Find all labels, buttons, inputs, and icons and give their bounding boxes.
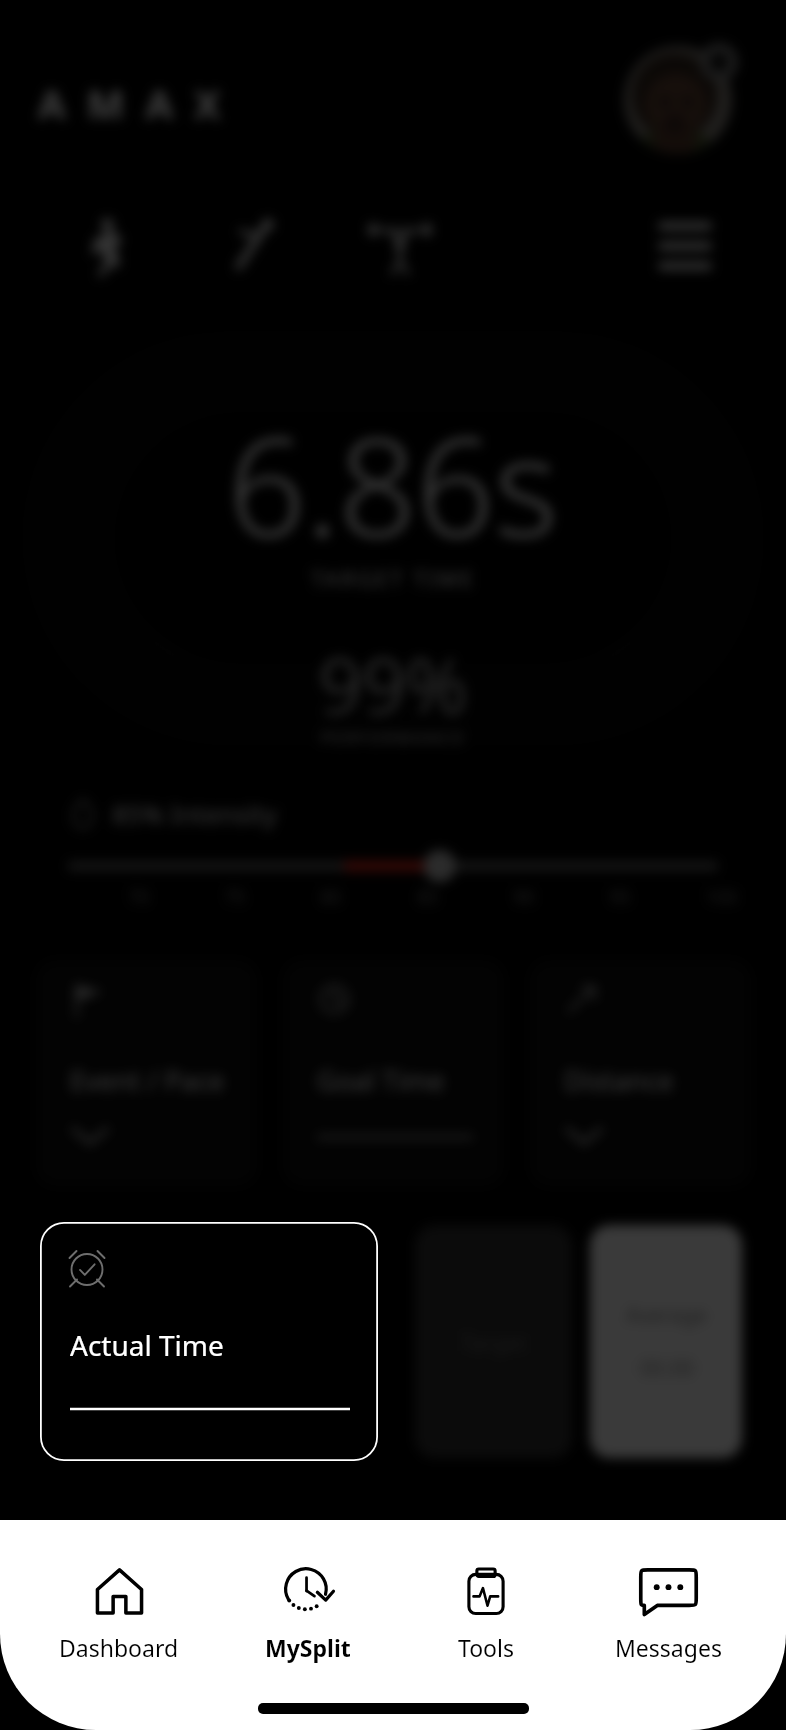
button[interactable]: Actual Time — [40, 1222, 378, 1461]
staticText: Messages — [615, 1632, 722, 1663]
staticText: TARGET TIME — [311, 563, 476, 593]
staticText: Tools — [458, 1632, 514, 1663]
button[interactable]: Messages — [593, 1566, 743, 1663]
staticText: 99% — [319, 632, 468, 736]
button[interactable]: Lift — [367, 210, 433, 276]
button[interactable]: Tools — [411, 1566, 561, 1663]
button[interactable]: Menu — [656, 216, 716, 272]
button[interactable]: Sprint — [77, 210, 143, 276]
staticText: 6.86s — [228, 392, 558, 577]
staticText: Goal Time — [317, 1062, 445, 1099]
button[interactable]: Average — [590, 1225, 742, 1458]
button[interactable]: Profile — [624, 46, 732, 154]
button[interactable]: AMAX — [38, 76, 242, 130]
button[interactable]: MySplit — [233, 1566, 383, 1663]
button[interactable]: Swim — [219, 210, 285, 276]
button[interactable]: Event / Pace — [38, 962, 255, 1184]
staticText: Dashboard — [59, 1632, 179, 1663]
button[interactable]: 85% Intensity — [66, 796, 277, 831]
staticText: Distance — [564, 1062, 674, 1099]
button[interactable]: Dashboard — [44, 1566, 194, 1663]
staticText: Event / Pace — [70, 1062, 225, 1099]
staticText: MySplit — [265, 1632, 351, 1663]
staticText: Actual Time — [70, 1326, 224, 1364]
staticText: 85% Intensity — [112, 796, 277, 831]
button[interactable]: Distance — [532, 962, 749, 1184]
button[interactable]: Goal Time — [285, 962, 502, 1184]
